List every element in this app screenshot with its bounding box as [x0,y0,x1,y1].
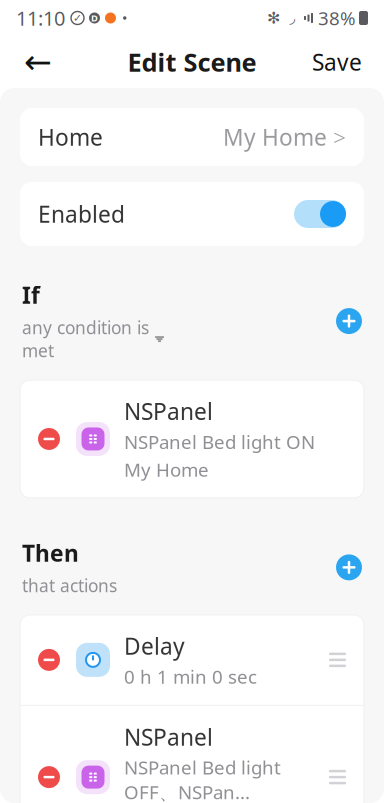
staticText: Enabled [38,199,125,229]
button[interactable]: Remove NSPanel [38,428,60,450]
staticText: 11:10 [16,5,65,31]
button[interactable]: Back [16,40,60,84]
staticText: D [91,12,98,24]
button[interactable]: Save [306,40,368,84]
staticText: ✓ [73,12,82,24]
staticText: NSPanel Bed light OFF、NSPan... [124,755,281,803]
staticText: ← [24,43,52,81]
staticText: 0 h 1 min 0 sec [124,664,257,689]
button[interactable]: Delay [20,615,364,705]
staticText: NSPanel [124,722,213,752]
staticText: Delay [124,631,185,661]
button[interactable]: Enabled [20,182,364,246]
staticText: ◞ [289,10,295,26]
button[interactable]: NSPanel [20,706,364,803]
staticText: Then [22,538,79,568]
staticText: > [333,122,346,152]
staticText: ✻ [267,9,280,27]
button[interactable]: Add If item [336,308,362,334]
staticText: If [22,280,40,310]
staticText: NSPanel Bed light ON [124,429,315,454]
staticText: that actions [22,574,117,597]
button[interactable]: NSPanel [20,380,364,498]
staticText: My Home [124,457,209,482]
staticText: NSPanel [124,396,213,426]
staticText: My Home [223,122,327,152]
staticText: any condition is met [22,316,149,362]
staticText: 38% [318,6,356,30]
button[interactable]: Add Then item [336,554,362,580]
staticText: Home [38,122,103,152]
button[interactable]: Remove NSPanel [38,766,60,788]
staticText: Save [312,47,362,77]
button[interactable]: Home [20,108,364,166]
staticText: Edit Scene [127,45,256,79]
button[interactable]: Remove Delay [38,649,60,671]
